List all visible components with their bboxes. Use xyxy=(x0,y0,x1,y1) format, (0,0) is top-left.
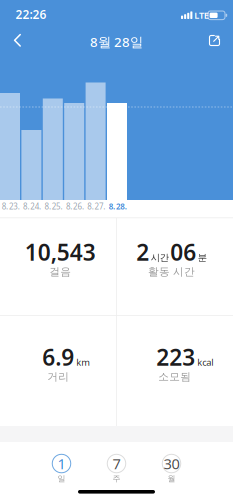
staticText: 2 xyxy=(136,237,149,267)
staticText: 10,543 xyxy=(25,237,96,267)
staticText: 월 xyxy=(167,474,175,484)
staticText: km xyxy=(76,356,90,368)
button[interactable]: Back xyxy=(7,29,33,53)
staticText: 8월 28일 xyxy=(90,33,143,51)
staticText: kcal xyxy=(197,356,213,368)
staticText: 거리 xyxy=(47,370,69,383)
staticText: 22:26 xyxy=(15,6,46,22)
staticText: 시간 xyxy=(151,252,169,263)
staticText: LTE xyxy=(194,9,209,21)
staticText: 주 xyxy=(112,474,120,484)
button[interactable]: 30 xyxy=(151,454,191,484)
staticText: 223 xyxy=(156,342,195,372)
staticText: 8. 28. xyxy=(109,201,127,212)
staticText: 8. 24. xyxy=(23,201,41,212)
staticText: 8. 27. xyxy=(87,201,105,212)
staticText: 일 xyxy=(57,474,65,484)
staticText: 1 xyxy=(57,454,65,473)
staticText: 6.9 xyxy=(42,342,74,372)
staticText: 7 xyxy=(112,454,120,473)
button[interactable]: 7 xyxy=(96,454,136,484)
staticText: 06 xyxy=(170,237,196,267)
staticText: 분 xyxy=(198,252,207,263)
staticText: 8. 26. xyxy=(66,201,84,212)
button[interactable]: 1 xyxy=(41,454,81,484)
staticText: 8. 23. xyxy=(2,201,20,212)
staticText: 8. 25. xyxy=(44,201,62,212)
staticText: 소모됨 xyxy=(158,370,191,383)
staticText: 30 xyxy=(163,454,179,473)
staticText: 활동 시간 xyxy=(148,265,195,278)
staticText: 걸음 xyxy=(49,265,71,278)
button[interactable]: Share xyxy=(201,29,227,53)
